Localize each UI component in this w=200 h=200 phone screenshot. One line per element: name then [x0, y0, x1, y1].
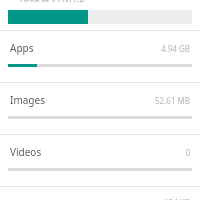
button[interactable]: Audio [0, 186, 200, 200]
button[interactable] [8, 10, 192, 24]
staticText: 0 [185, 147, 190, 158]
staticText: 124 KB [164, 197, 190, 200]
button[interactable]: Images [0, 82, 200, 134]
staticText: Used of 32.00 GB [20, 0, 85, 2]
button[interactable]: Videos [0, 134, 200, 186]
staticText: Videos [10, 145, 42, 159]
staticText: Images [10, 93, 45, 107]
staticText: 52.61 MB [155, 95, 190, 106]
button[interactable]: Apps [0, 30, 200, 82]
staticText: 4.94 GB [161, 43, 190, 54]
staticText: Apps [10, 41, 34, 55]
